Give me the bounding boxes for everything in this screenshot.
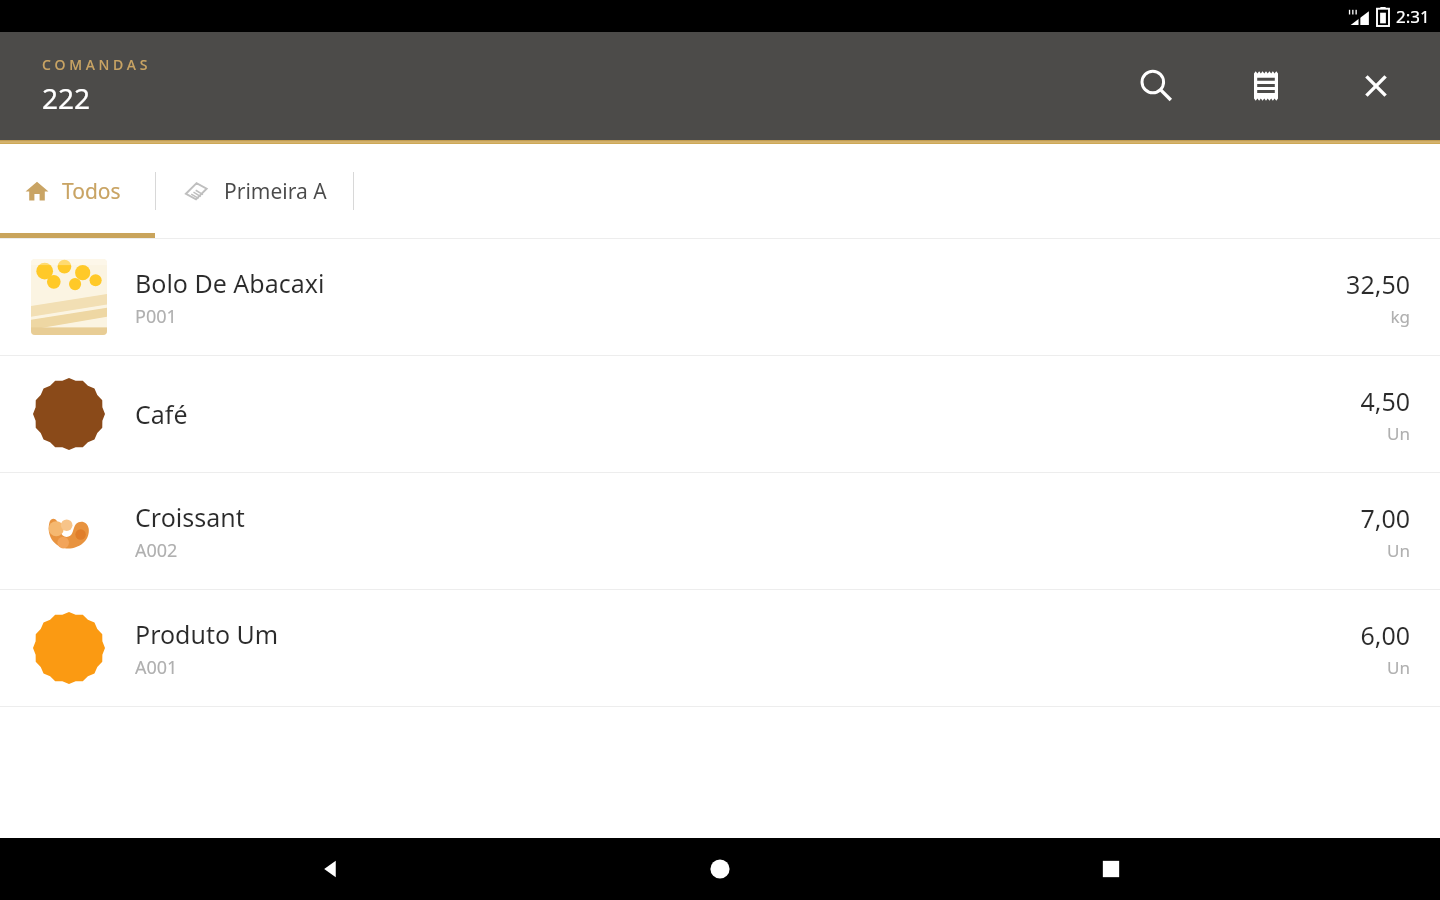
button[interactable]: Close <box>1346 56 1406 116</box>
staticText: 32,50 <box>1346 267 1410 301</box>
staticText: 2:31 <box>1396 5 1430 28</box>
button[interactable]: Primeira A <box>156 144 353 238</box>
staticText: Un <box>1387 539 1410 562</box>
staticText: kg <box>1390 305 1410 328</box>
button[interactable]: Produto Um <box>0 590 1440 706</box>
button[interactable]: Todos <box>0 144 155 238</box>
staticText: Produto Um <box>135 617 279 651</box>
button[interactable]: Recents <box>1079 838 1143 900</box>
staticText: Primeira A <box>224 177 327 206</box>
button[interactable]: Café <box>0 356 1440 472</box>
staticText: Bolo De Abacaxi <box>135 266 325 300</box>
button[interactable]: Home <box>688 838 752 900</box>
staticText: 4,50 <box>1360 384 1410 418</box>
staticText: P001 <box>135 304 177 329</box>
staticText: 222 <box>42 79 91 117</box>
staticText: A002 <box>135 538 178 563</box>
staticText: C O M A N D A S <box>42 55 148 74</box>
button[interactable]: Search <box>1126 56 1186 116</box>
button[interactable]: Receipt <box>1236 56 1296 116</box>
button[interactable]: Back <box>297 838 361 900</box>
button[interactable]: Croissant <box>0 473 1440 589</box>
staticText: Croissant <box>135 500 245 534</box>
staticText: Un <box>1387 422 1410 445</box>
staticText: Café <box>135 397 188 431</box>
staticText: Un <box>1387 656 1410 679</box>
staticText: 7,00 <box>1360 501 1410 535</box>
staticText: A001 <box>135 655 178 680</box>
button[interactable]: Bolo De Abacaxi <box>0 239 1440 355</box>
staticText: 6,00 <box>1360 618 1410 652</box>
staticText: Todos <box>62 177 121 206</box>
